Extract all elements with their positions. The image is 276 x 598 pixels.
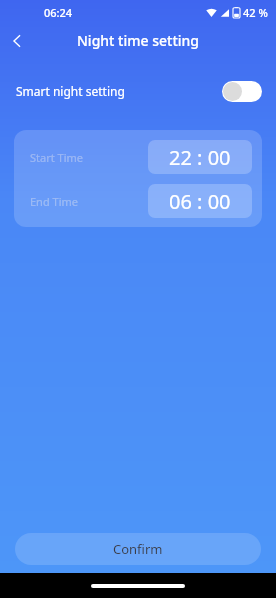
- button[interactable]: Back: [0, 24, 34, 57]
- button[interactable]: Start Time: [14, 140, 262, 174]
- button[interactable]: Smart night setting: [0, 75, 276, 107]
- staticText: 06:24: [44, 5, 73, 20]
- button[interactable]: Confirm: [15, 533, 261, 565]
- staticText: Confirm: [113, 540, 163, 558]
- staticText: Night time setting: [77, 31, 199, 50]
- staticText: 06 : 00: [169, 188, 231, 215]
- staticText: 42 %: [243, 5, 268, 20]
- staticText: End Time: [30, 194, 78, 209]
- staticText: Start Time: [30, 150, 83, 165]
- button[interactable]: End Time: [14, 184, 262, 218]
- staticText: 22 : 00: [169, 144, 231, 171]
- button[interactable]: Smart night setting toggle: [222, 81, 262, 102]
- staticText: Smart night setting: [16, 83, 125, 99]
